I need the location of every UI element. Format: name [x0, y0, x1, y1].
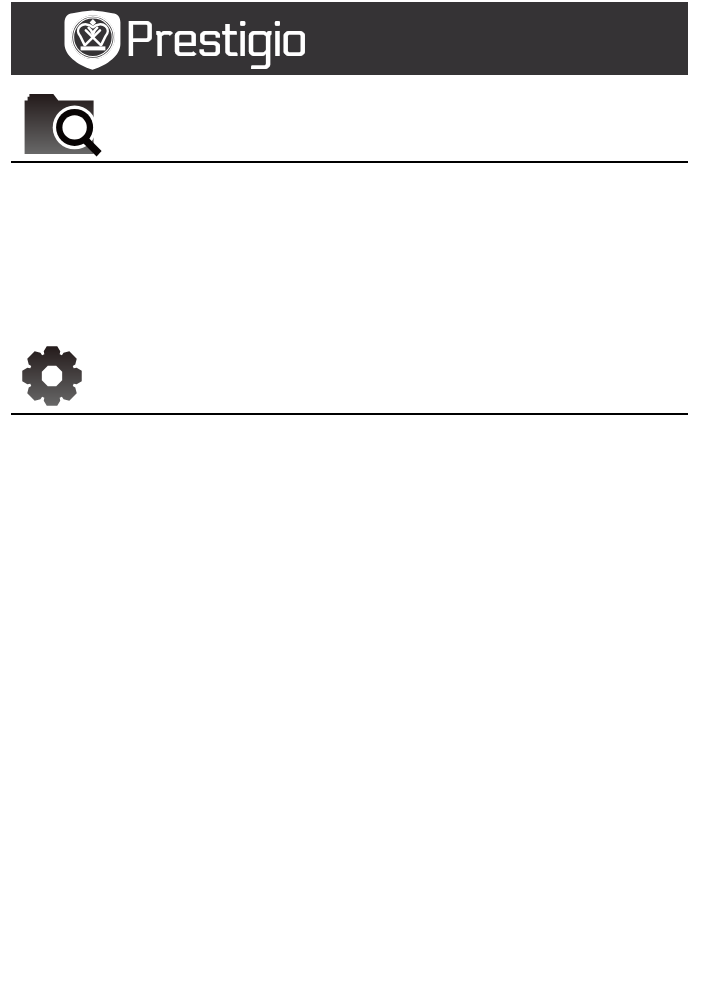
staticText: Prestigio: [124, 11, 306, 69]
button[interactable]: Browse files: [11, 78, 688, 162]
button[interactable]: Prestigio: [11, 2, 688, 75]
button[interactable]: Settings: [11, 332, 688, 412]
